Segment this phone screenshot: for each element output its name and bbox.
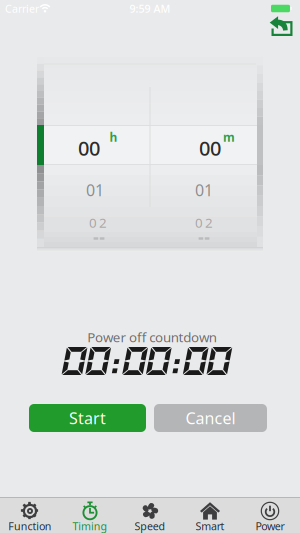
staticText: h xyxy=(109,129,117,145)
button[interactable]: Smart xyxy=(180,498,240,533)
staticText: Power xyxy=(255,519,285,533)
staticText: Smart xyxy=(195,519,225,533)
staticText: Speed xyxy=(134,519,166,533)
staticText: Power off countdown xyxy=(87,328,217,346)
staticText: 02 xyxy=(89,214,107,231)
staticText: Start xyxy=(69,407,106,429)
button[interactable]: Start xyxy=(29,404,146,432)
button[interactable]: Power xyxy=(240,498,300,533)
staticText: 9:59 AM xyxy=(129,1,170,16)
staticText: 00 xyxy=(199,135,221,161)
staticText: Timing xyxy=(72,519,107,533)
button[interactable]: Exit xyxy=(265,12,296,40)
button[interactable]: Cancel xyxy=(154,404,267,432)
staticText: 02 xyxy=(195,214,213,231)
button[interactable]: Speed xyxy=(120,498,180,533)
button[interactable]: Function xyxy=(0,498,60,533)
staticText: Cancel xyxy=(185,407,235,429)
staticText: m xyxy=(223,129,235,145)
staticText: Function xyxy=(8,519,52,533)
staticText: 01 xyxy=(86,179,104,201)
staticText: Carrier xyxy=(5,1,39,16)
staticText: 01 xyxy=(195,179,213,201)
staticText: 00 xyxy=(78,135,100,161)
button[interactable]: Timing xyxy=(60,498,120,533)
